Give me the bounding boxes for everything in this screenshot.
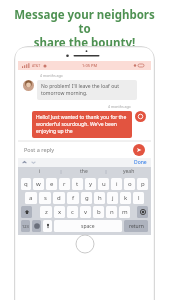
- staticText: l: [138, 194, 140, 202]
- button[interactable]: m: [119, 206, 130, 218]
- button[interactable]: r: [59, 178, 70, 190]
- staticText: the: [80, 168, 88, 175]
- staticText: i: [116, 180, 118, 188]
- staticText: return: [129, 223, 144, 230]
- staticText: 4 months ago: [40, 73, 63, 78]
- button[interactable]: z: [40, 206, 52, 218]
- button[interactable]: x: [54, 206, 65, 218]
- button[interactable]: the: [62, 167, 106, 176]
- button[interactable]: q: [21, 178, 31, 190]
- button[interactable]: Hello! Just wanted to thank you for the …: [36, 114, 128, 135]
- button[interactable]: space: [54, 220, 122, 232]
- button[interactable]: 123: [21, 220, 30, 232]
- staticText: v: [84, 208, 88, 216]
- staticText: 1:05 PM: [82, 63, 98, 68]
- staticText: No problem! I'll leave the loaf out tomo…: [41, 83, 133, 97]
- button[interactable]: No problem! I'll leave the loaf out tomo…: [41, 83, 133, 97]
- button[interactable]: t: [72, 178, 83, 190]
- staticText: r: [63, 180, 66, 188]
- staticText: i: [39, 168, 41, 175]
- button[interactable]: l: [133, 192, 144, 204]
- button[interactable]: Dictation: [43, 220, 52, 232]
- staticText: e: [50, 180, 54, 188]
- button[interactable]: yeah: [107, 167, 151, 176]
- button[interactable]: j: [107, 192, 118, 204]
- button[interactable]: a: [25, 192, 37, 204]
- staticText: space: [81, 223, 95, 230]
- button[interactable]: w: [33, 178, 44, 190]
- staticText: Hello! Just wanted to thank you for the …: [36, 114, 128, 135]
- button[interactable]: i: [111, 178, 122, 190]
- button[interactable]: v: [80, 206, 91, 218]
- staticText: 4 months ago: [108, 104, 131, 109]
- button[interactable]: n: [106, 206, 117, 218]
- staticText: o: [128, 180, 132, 188]
- button[interactable]: Shift: [21, 206, 32, 218]
- button[interactable]: p: [137, 178, 148, 190]
- staticText: 123: [22, 224, 29, 229]
- staticText: h: [98, 194, 102, 202]
- staticText: t: [76, 180, 79, 188]
- staticText: m: [122, 208, 128, 216]
- button[interactable]: s: [39, 192, 51, 204]
- staticText: d: [57, 194, 61, 202]
- button[interactable]: [22, 160, 27, 165]
- staticText: g: [85, 194, 89, 202]
- button[interactable]: Emoji: [32, 220, 41, 232]
- staticText: AT&T: [32, 63, 41, 68]
- staticText: x: [58, 208, 62, 216]
- staticText: q: [24, 180, 28, 188]
- staticText: a: [29, 194, 33, 202]
- staticText: k: [124, 194, 128, 202]
- button[interactable]: return: [124, 220, 148, 232]
- staticText: z: [45, 208, 48, 216]
- staticText: s: [44, 194, 47, 202]
- button[interactable]: d: [53, 192, 65, 204]
- staticText: u: [102, 180, 106, 188]
- staticText: c: [71, 208, 74, 216]
- button[interactable]: i: [18, 167, 61, 176]
- staticText: Post a reply: [24, 146, 55, 153]
- button[interactable]: y: [85, 178, 96, 190]
- staticText: Done: [134, 159, 147, 166]
- button[interactable]: k: [120, 192, 131, 204]
- button[interactable]: Send: [133, 144, 145, 156]
- staticText: w: [36, 180, 41, 188]
- staticText: yeah: [123, 168, 135, 175]
- staticText: b: [97, 208, 101, 216]
- button[interactable]: h: [94, 192, 105, 204]
- staticText: f: [72, 194, 75, 202]
- button[interactable]: e: [46, 178, 57, 190]
- button[interactable]: f: [67, 192, 79, 204]
- staticText: j: [112, 194, 114, 202]
- staticText: p: [141, 180, 145, 188]
- button[interactable]: [31, 160, 36, 165]
- button[interactable]: b: [93, 206, 104, 218]
- button[interactable]: Backspace: [137, 206, 148, 218]
- staticText: Message your neighbors to share the boun…: [8, 7, 161, 50]
- staticText: y: [89, 180, 93, 188]
- button[interactable]: c: [67, 206, 78, 218]
- button[interactable]: o: [124, 178, 135, 190]
- button[interactable]: u: [98, 178, 109, 190]
- staticText: n: [110, 208, 114, 216]
- button[interactable]: g: [81, 192, 92, 204]
- button[interactable]: Done: [134, 159, 147, 166]
